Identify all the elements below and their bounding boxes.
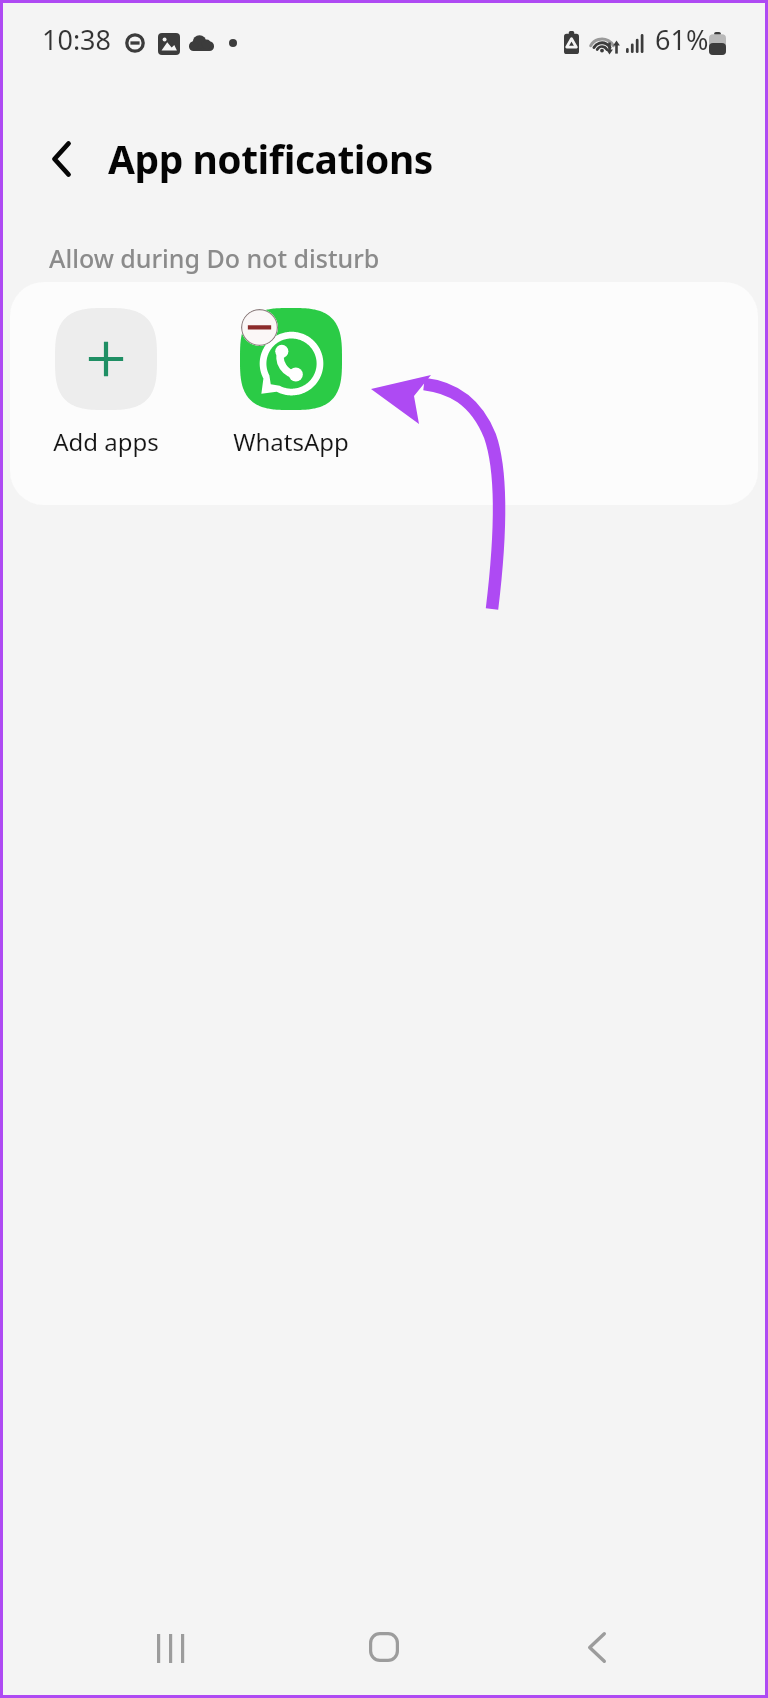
button[interactable]: Add apps xyxy=(11,304,201,458)
button[interactable]: Home xyxy=(336,1602,432,1692)
button[interactable]: Remove WhatsApp xyxy=(196,304,386,458)
button[interactable]: Recent apps xyxy=(123,1603,219,1693)
button[interactable]: Back xyxy=(549,1602,645,1692)
staticText: Allow during Do not disturb xyxy=(49,241,380,275)
staticText: 61% xyxy=(655,21,709,58)
staticText: Add apps xyxy=(53,425,159,458)
staticText: App notifications xyxy=(108,132,433,185)
button[interactable]: Back xyxy=(27,125,95,193)
button[interactable]: Remove WhatsApp xyxy=(241,309,278,346)
staticText: 10:38 xyxy=(42,21,112,58)
staticText: WhatsApp xyxy=(233,425,349,458)
